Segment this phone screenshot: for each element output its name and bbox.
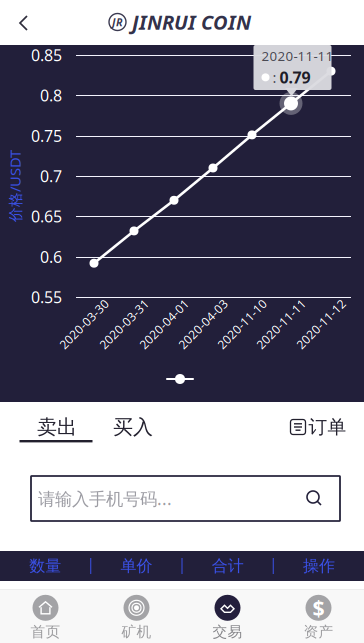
staticText: 2020-04-03 [171, 316, 235, 332]
staticText: 2020-11-12 [289, 316, 353, 332]
staticText: JR [112, 15, 123, 29]
button[interactable]: Back [16, 11, 44, 35]
staticText: 价格/USDT [0, 176, 51, 196]
staticText: 0.55 [31, 286, 62, 308]
button[interactable]: 订单 [289, 411, 346, 443]
button[interactable]: 卖出 [20, 411, 93, 443]
staticText: 首页 [30, 623, 60, 641]
button[interactable]: 首页 [0, 590, 91, 643]
staticText: 2020-11-11 [261, 47, 333, 65]
staticText: 2020-04-01 [132, 316, 196, 332]
staticText: JINRUI COIN [132, 9, 251, 35]
staticText: 0.8 [40, 85, 62, 106]
staticText: 2020-03-30 [52, 316, 116, 332]
staticText: 0.79 [279, 67, 310, 88]
staticText: 买入 [113, 415, 153, 439]
staticText: 请输入手机号码... [38, 487, 172, 510]
staticText: 0.65 [31, 206, 62, 227]
staticText: 0.75 [31, 125, 62, 146]
staticText: 2020-11-11 [249, 316, 313, 332]
staticText: 数量 [29, 556, 61, 576]
staticText: 0.6 [40, 246, 62, 267]
staticText: 合计 [212, 556, 244, 576]
button[interactable]: 矿机 [91, 590, 182, 643]
button[interactable]: $ [273, 590, 364, 643]
staticText: 单价 [120, 556, 152, 576]
staticText: 矿机 [121, 623, 151, 641]
staticText: : [272, 68, 276, 87]
staticText: $ [312, 594, 324, 622]
staticText: 2020-03-31 [92, 316, 156, 332]
staticText: 卖出 [37, 415, 77, 439]
staticText: 0.7 [40, 165, 62, 187]
staticText: 操作 [303, 556, 335, 576]
staticText: 订单 [308, 415, 346, 438]
button[interactable]: 买入 [111, 411, 155, 443]
staticText: 2020-11-10 [210, 316, 274, 332]
button[interactable]: 交易 [182, 590, 273, 643]
staticText: 0.85 [31, 44, 62, 66]
staticText: 资产 [303, 623, 333, 641]
staticText: 交易 [212, 623, 242, 641]
